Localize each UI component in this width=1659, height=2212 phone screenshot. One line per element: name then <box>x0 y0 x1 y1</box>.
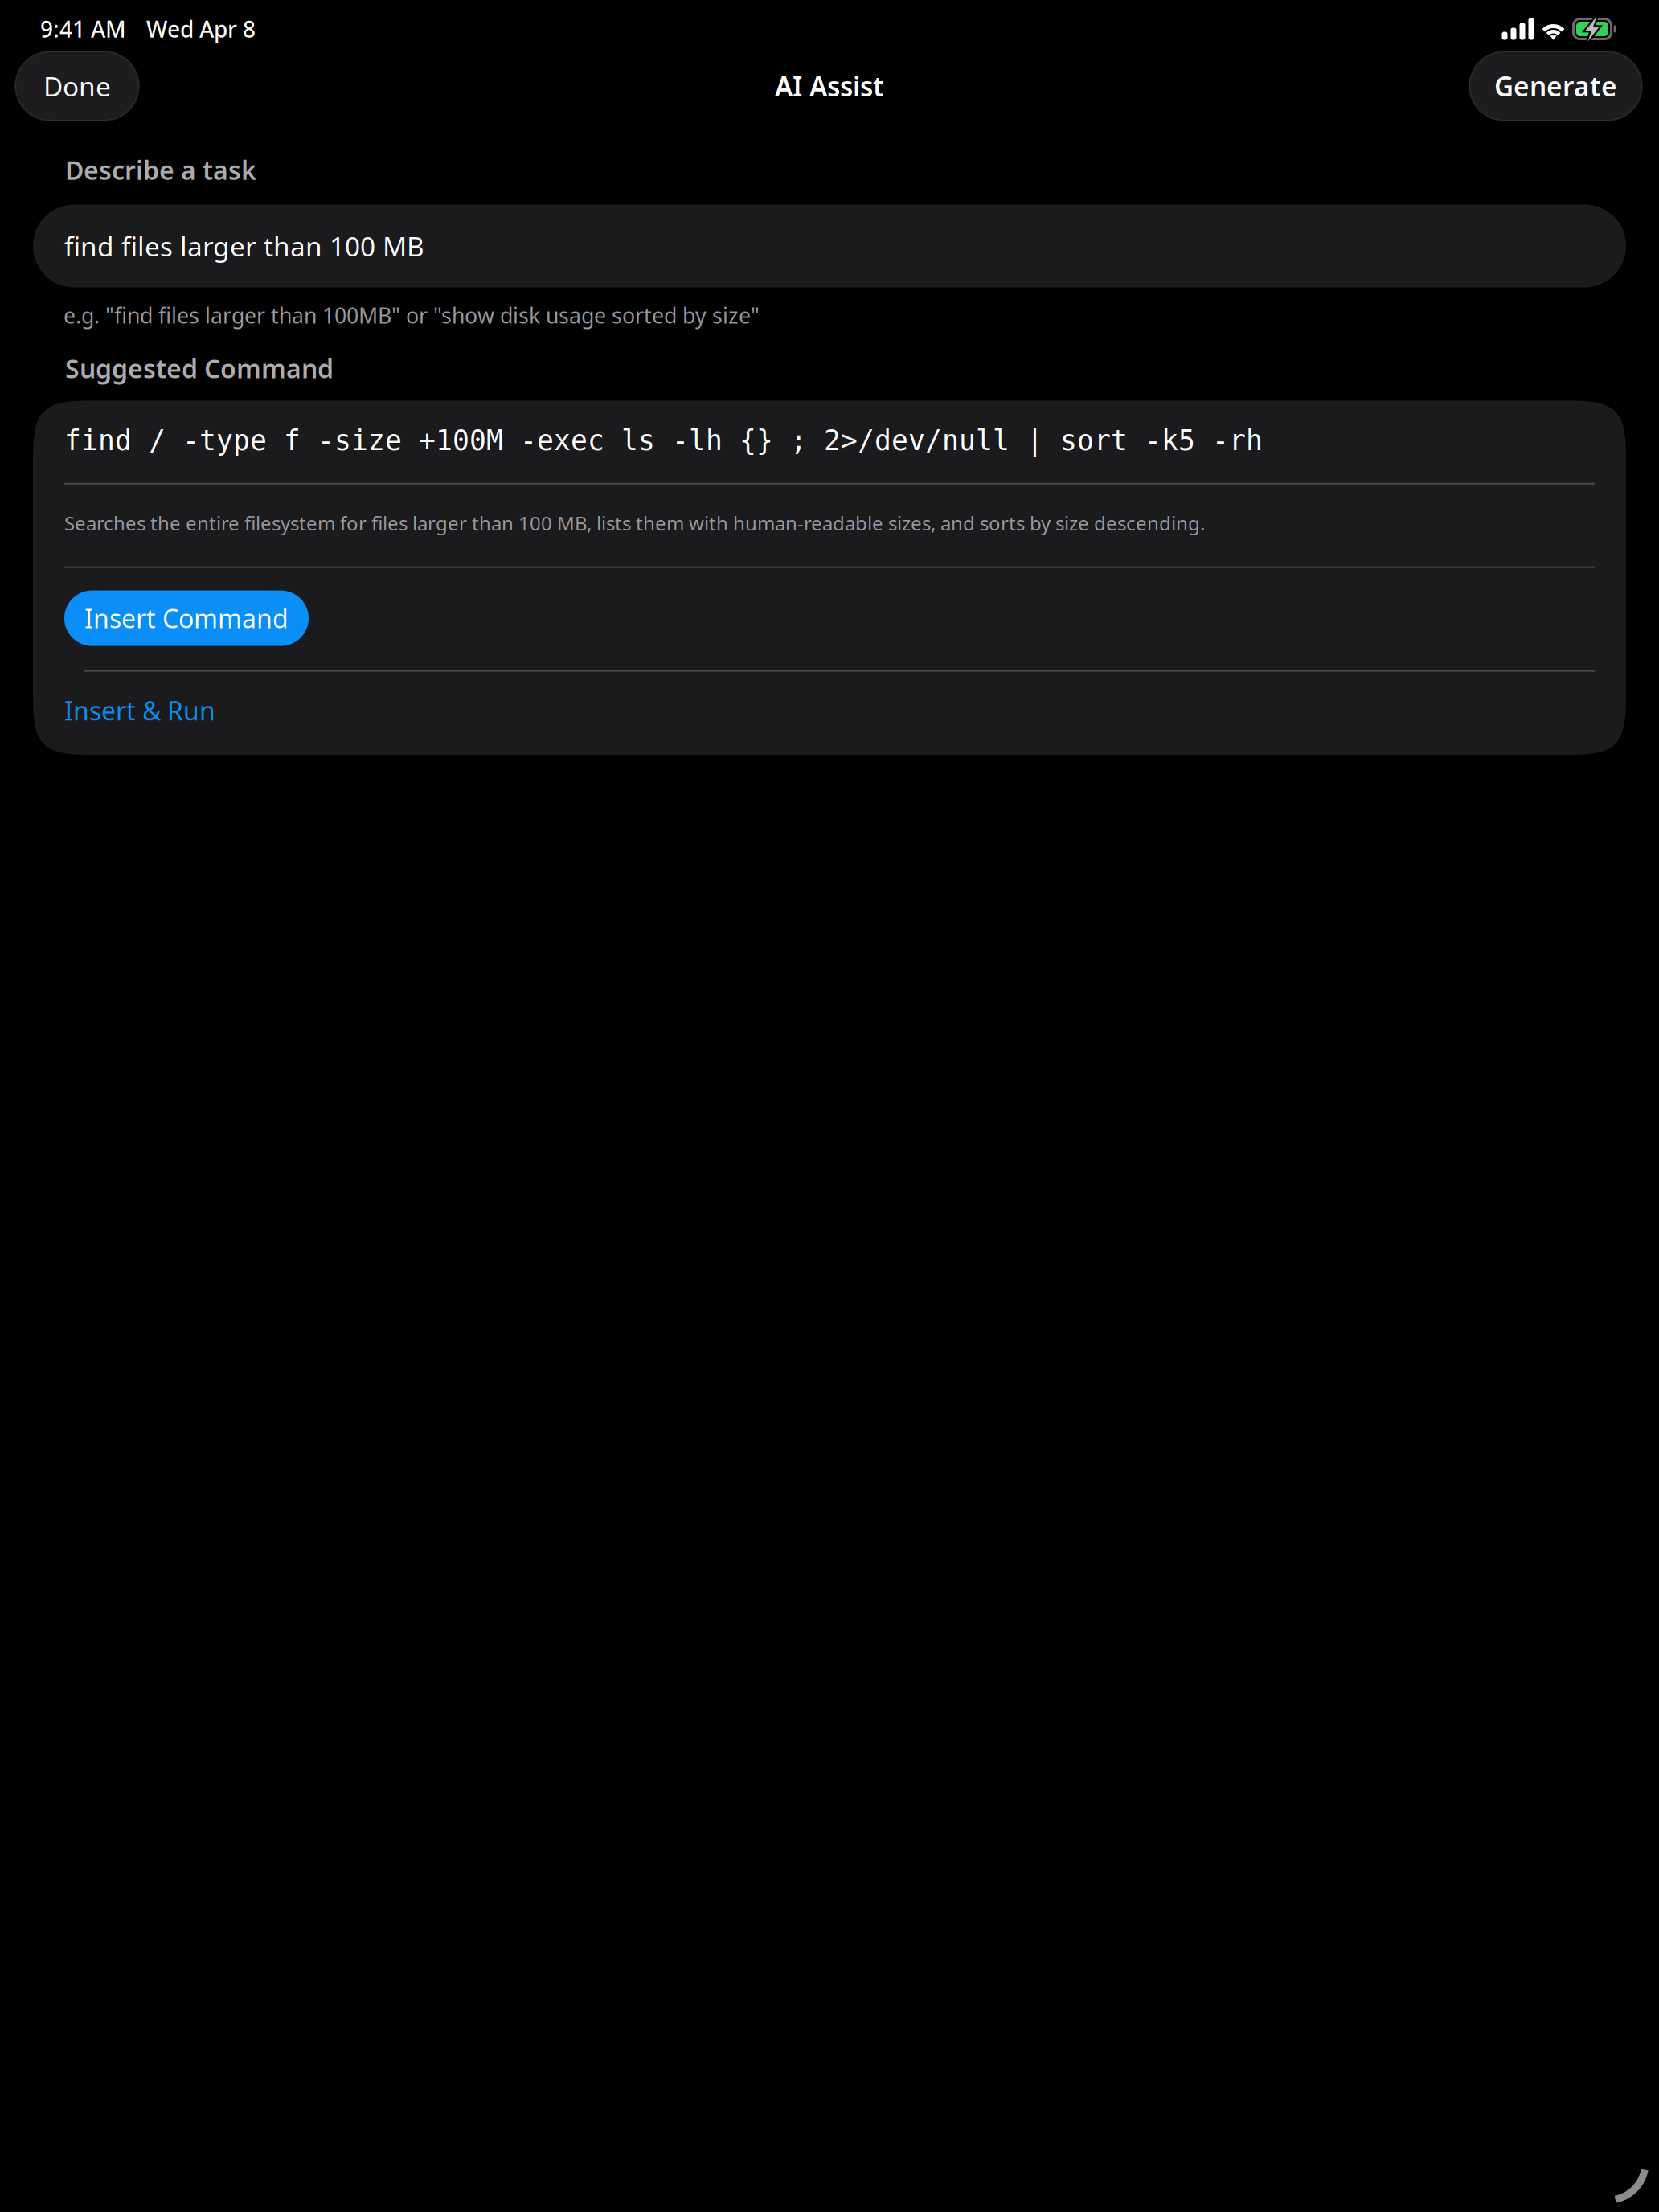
staticText: Done <box>43 68 111 104</box>
staticText: Wed Apr 8 <box>146 14 256 44</box>
staticText: Searches the entire filesystem for files… <box>64 510 1205 536</box>
button[interactable]: Generate <box>1469 51 1642 121</box>
staticText: find files larger than 100 MB <box>64 228 424 264</box>
staticText: e.g. "find files larger than 100MB" or "… <box>63 301 760 329</box>
staticText: Insert & Run <box>64 693 215 728</box>
staticText: 9:41 AM <box>40 14 126 44</box>
staticText: Insert Command <box>84 601 289 635</box>
button[interactable]: Done <box>15 51 139 121</box>
button[interactable]: Insert Command <box>64 590 309 646</box>
button[interactable]: find files larger than 100 MB <box>33 205 1626 287</box>
staticText: AI Assist <box>775 68 884 104</box>
staticText: Describe a task <box>65 153 256 187</box>
staticText: Suggested Command <box>65 351 334 385</box>
staticText: find / -type f -size +100M -exec ls -lh … <box>64 425 1263 456</box>
staticText: Generate <box>1494 68 1617 104</box>
button[interactable]: Insert & Run <box>64 672 1595 755</box>
